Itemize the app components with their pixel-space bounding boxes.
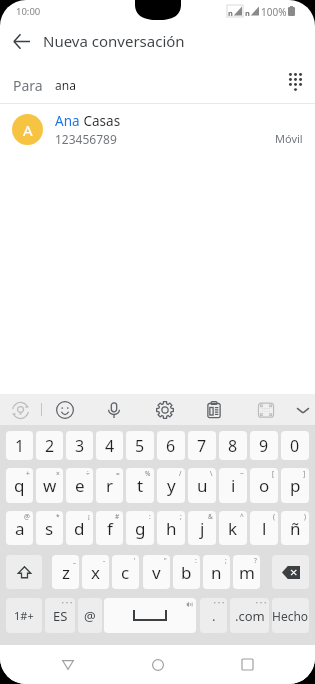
button[interactable]: w [36,468,63,503]
staticText: 0 [290,435,300,457]
staticText: @ [84,607,96,625]
staticText: / [179,469,182,478]
button[interactable]: n [203,555,230,589]
staticText: 2 [45,435,55,457]
button[interactable]: y [157,468,185,503]
staticText: ) [304,512,306,521]
button[interactable]: Voice input [99,395,129,425]
button[interactable]: h [157,511,185,545]
button[interactable]: Google Lens [5,395,35,425]
button[interactable]: 6 [157,431,185,460]
button[interactable]: q [6,468,33,503]
staticText: w [43,474,57,497]
button[interactable]: 1 [6,431,33,460]
button[interactable]: a [6,511,33,545]
staticText: a [15,517,25,540]
button[interactable]: A [0,104,315,154]
button[interactable]: Back [47,645,89,684]
staticText: 7 [197,435,207,457]
staticText: _ [73,556,76,565]
button[interactable]: m [233,555,260,589]
staticText: Ana [55,112,80,130]
button[interactable]: o [250,468,278,503]
staticText: 5 [135,435,145,457]
staticText: b [181,561,192,584]
button[interactable]: i [219,468,247,503]
staticText: p [290,474,301,497]
staticText: ES [53,607,68,625]
button[interactable]: Space [104,598,196,633]
staticText: ana [55,77,76,93]
staticText: : [195,556,197,565]
button[interactable]: e [66,468,93,503]
button[interactable]: Shift [6,555,42,589]
button[interactable]: Emoji [50,395,80,425]
button[interactable]: Dialpad [275,61,315,101]
staticText: * [56,512,60,521]
button[interactable]: @ [78,598,102,633]
button[interactable]: Stickers [251,395,281,425]
staticText: ? [254,556,257,565]
staticText: u [197,474,208,497]
button[interactable]: u [188,468,216,503]
button[interactable]: d [66,511,93,545]
staticText: " [164,556,167,565]
button[interactable]: .com [230,598,269,633]
button[interactable]: ES [45,598,75,633]
button[interactable]: c [112,555,139,589]
button[interactable]: z [52,555,79,589]
button[interactable]: 2 [36,431,63,460]
staticText: n [228,8,233,18]
button[interactable]: Backspace [272,555,309,589]
button[interactable]: r [96,468,123,503]
button[interactable]: 7 [188,431,216,460]
staticText: [ [272,469,275,478]
button[interactable]: 9 [250,431,278,460]
button[interactable]: j [188,511,216,545]
button[interactable]: t [126,468,154,503]
button[interactable]: ñ [281,511,309,545]
button[interactable]: Home [137,645,179,684]
button[interactable]: g [126,511,154,545]
staticText: t [137,474,144,497]
button[interactable]: f [96,511,123,545]
staticText: × [56,469,60,478]
button[interactable]: x [82,555,109,589]
button[interactable]: 4 [96,431,123,460]
staticText: n [245,8,250,18]
button[interactable]: 1#+ [6,598,42,633]
button[interactable]: b [173,555,200,589]
button[interactable]: Recents [226,645,268,684]
button[interactable]: 8 [219,431,247,460]
staticText: z [62,561,70,584]
button[interactable]: Collapse keyboard [288,395,315,425]
staticText: r [106,474,114,497]
staticText: y [167,474,176,497]
staticText: & [208,512,213,521]
staticText: x [91,561,100,584]
button[interactable]: Hecho [272,598,309,633]
button[interactable]: 0 [281,431,309,460]
staticText: 6 [166,435,176,457]
staticText: m [239,561,255,584]
staticText: Nueva conversación [43,31,185,51]
button[interactable]: . [200,598,227,633]
staticText: 100% [261,5,287,19]
staticText: i [231,474,236,497]
button[interactable]: Settings [150,395,180,425]
button[interactable]: 5 [126,431,154,460]
button[interactable]: p [281,468,309,503]
button[interactable]: 3 [66,431,93,460]
staticText: f [107,517,113,540]
button[interactable]: Back [3,23,39,59]
button[interactable]: s [36,511,63,545]
button[interactable]: v [143,555,170,589]
staticText: 4 [105,435,115,457]
button[interactable]: k [219,511,247,545]
staticText: ¡ [88,512,90,521]
staticText: ~ [240,469,244,478]
staticText: Hecho [272,608,309,624]
button[interactable]: Clipboard [199,395,229,425]
staticText: % [145,469,151,478]
button[interactable]: l [250,511,278,545]
